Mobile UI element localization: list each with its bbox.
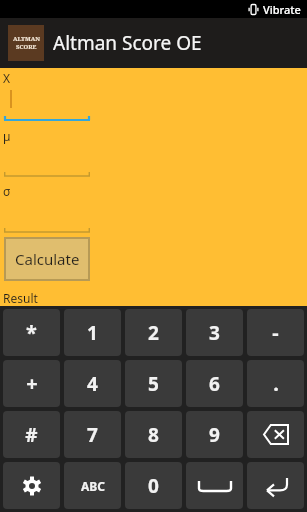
button[interactable]: 9 [186, 411, 243, 458]
staticText: + [26, 370, 38, 397]
button[interactable]: Enter [247, 462, 304, 509]
button[interactable]: 5 [125, 360, 182, 407]
button[interactable]: 0 [125, 462, 182, 509]
staticText: 8 [148, 422, 159, 448]
button[interactable]: Backspace [247, 411, 304, 458]
staticText: ALTMAN [13, 35, 40, 43]
staticText: . [273, 370, 279, 397]
button[interactable]: ABC [64, 462, 121, 509]
staticText: X [3, 70, 11, 86]
button[interactable]: Space [186, 462, 243, 509]
button[interactable]: 6 [186, 360, 243, 407]
staticText: * [26, 319, 37, 346]
staticText: 5 [148, 371, 159, 397]
button[interactable] [4, 199, 90, 234]
button[interactable] [4, 86, 90, 122]
button[interactable]: * [3, 309, 60, 356]
staticText: 0 [148, 473, 159, 499]
button[interactable]: 4 [64, 360, 121, 407]
button[interactable]: + [3, 360, 60, 407]
staticText: σ [3, 183, 11, 199]
staticText: Vibrate [263, 2, 301, 17]
button[interactable]: 8 [125, 411, 182, 458]
button[interactable]: - [247, 309, 304, 356]
button[interactable]: 1 [64, 309, 121, 356]
staticText: Calculate [15, 249, 80, 269]
staticText: µ [3, 128, 11, 144]
button[interactable] [4, 144, 90, 178]
staticText: 2 [148, 320, 159, 346]
staticText: ABC [81, 478, 105, 494]
staticText: # [25, 422, 38, 448]
button[interactable]: 7 [64, 411, 121, 458]
button[interactable]: Settings [3, 462, 60, 509]
button[interactable]: # [3, 411, 60, 458]
staticText: SCORE [16, 43, 37, 51]
staticText: 4 [87, 371, 98, 397]
button[interactable]: 3 [186, 309, 243, 356]
button[interactable]: . [247, 360, 304, 407]
staticText: 1 [87, 320, 98, 346]
staticText: 3 [209, 320, 220, 346]
button[interactable]: 2 [125, 309, 182, 356]
staticText: - [272, 319, 279, 346]
staticText: Altman Score OE [53, 30, 202, 56]
button[interactable]: Calculate [5, 238, 89, 280]
staticText: Result [3, 290, 38, 306]
staticText: 6 [209, 371, 220, 397]
staticText: 7 [87, 422, 98, 448]
button[interactable]: ALTMAN [0, 18, 307, 68]
staticText: 9 [209, 422, 220, 448]
